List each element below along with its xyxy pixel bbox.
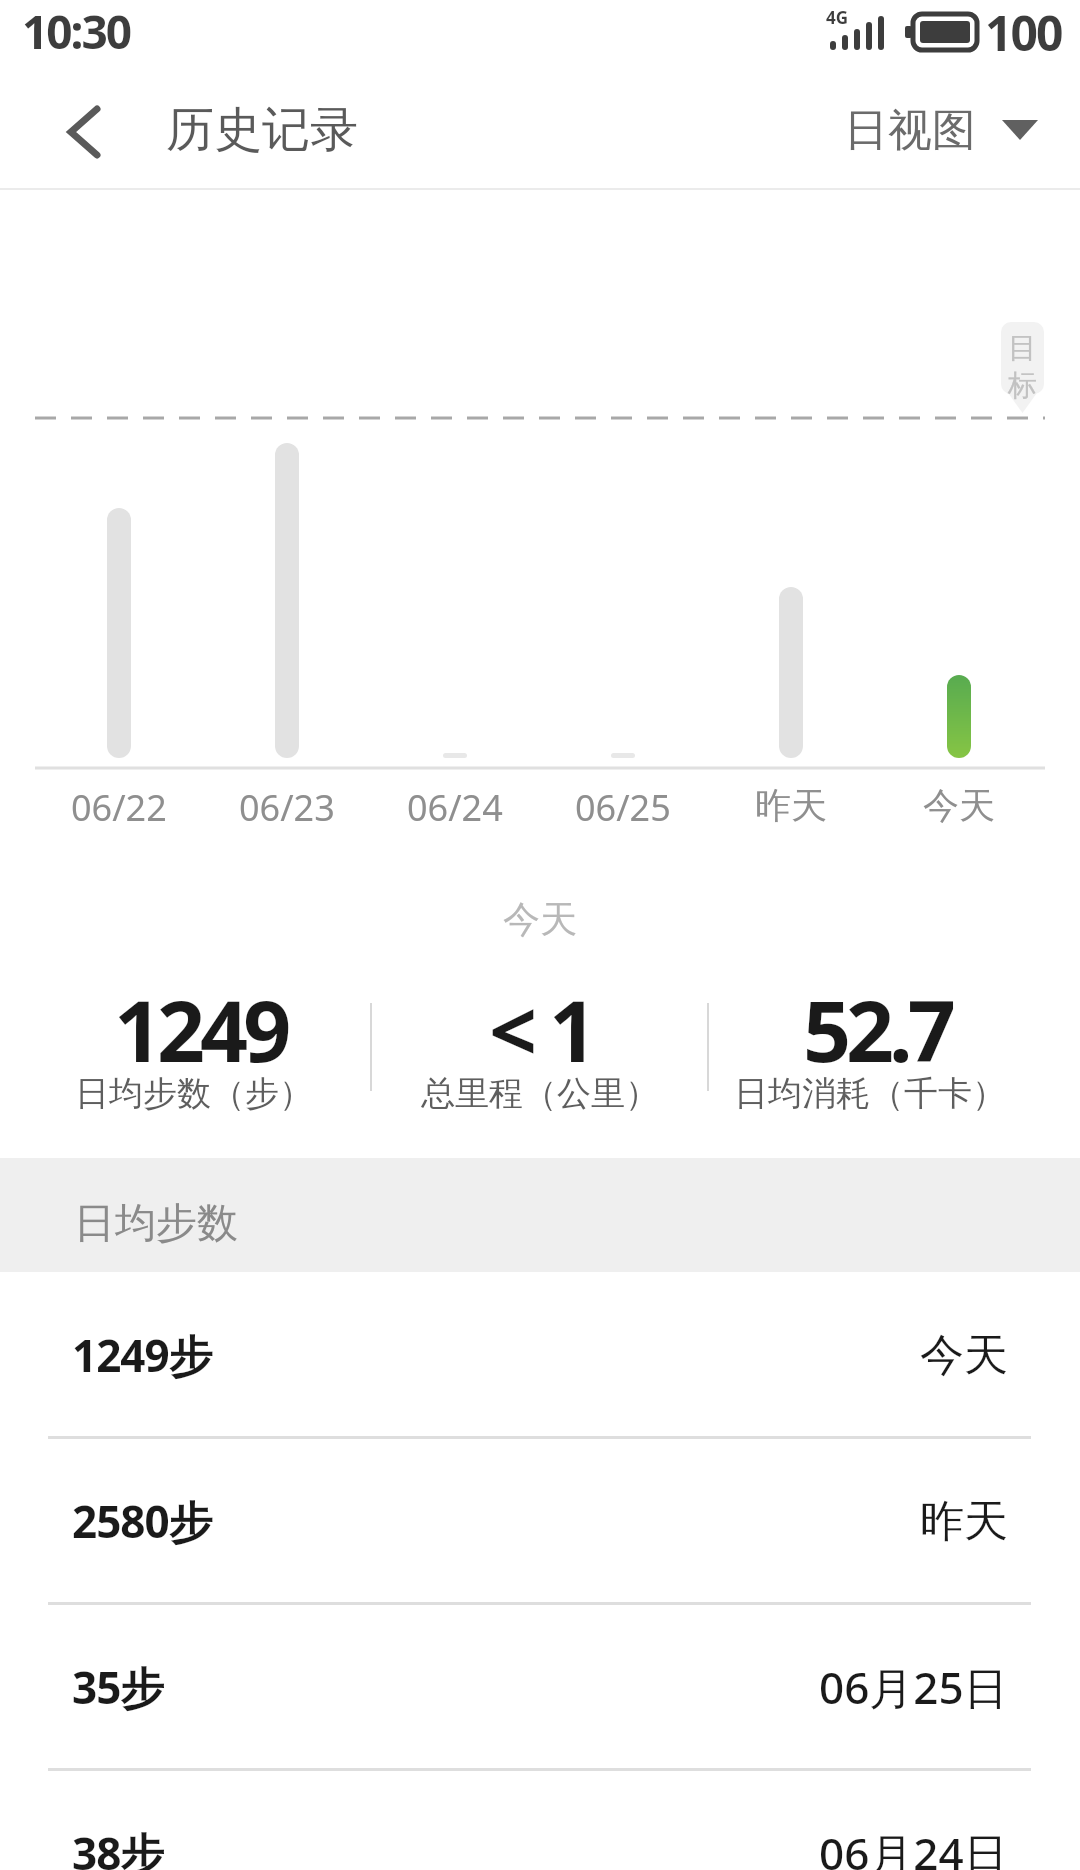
staticText: 日均步数（步） <box>75 1072 313 1115</box>
staticText: 4G <box>826 6 849 29</box>
staticText: 06/24 <box>407 783 503 832</box>
staticText: 历史记录 <box>166 100 358 160</box>
staticText: < 1 <box>489 972 592 1086</box>
staticText: 今天 <box>923 783 995 828</box>
staticText: 目 标 <box>1008 330 1037 403</box>
staticText: 06月25日 <box>819 1657 1008 1717</box>
button[interactable] <box>45 92 125 176</box>
staticText: 日均步数 <box>74 1198 238 1250</box>
button[interactable]: 日视图 <box>820 95 1058 165</box>
staticText: 2580步 <box>72 1491 212 1551</box>
staticText: 52.7 <box>803 972 951 1086</box>
staticText: 35步 <box>72 1657 164 1717</box>
button[interactable]: 35步 <box>0 1604 1080 1770</box>
staticText: 38步 <box>72 1823 164 1870</box>
staticText: 06/23 <box>239 783 335 832</box>
staticText: 1249 <box>114 972 287 1086</box>
staticText: 昨天 <box>755 783 827 828</box>
staticText: 1249步 <box>72 1325 212 1385</box>
button[interactable]: 2580步 <box>0 1438 1080 1604</box>
staticText: 今天 <box>920 1328 1008 1383</box>
staticText: 日均消耗（千卡） <box>734 1072 1006 1115</box>
staticText: 06/22 <box>71 783 167 832</box>
staticText: 06/25 <box>575 783 671 832</box>
staticText: 昨天 <box>920 1494 1008 1549</box>
staticText: 日视图 <box>844 103 976 158</box>
button[interactable]: 1249步 <box>0 1272 1080 1438</box>
button[interactable]: 38步 <box>0 1770 1080 1870</box>
staticText: 总里程（公里） <box>421 1072 659 1115</box>
staticText: 10:30 <box>22 0 131 63</box>
staticText: 06月24日 <box>819 1823 1008 1870</box>
staticText: 今天 <box>503 896 577 943</box>
staticText: 100 <box>985 0 1062 65</box>
